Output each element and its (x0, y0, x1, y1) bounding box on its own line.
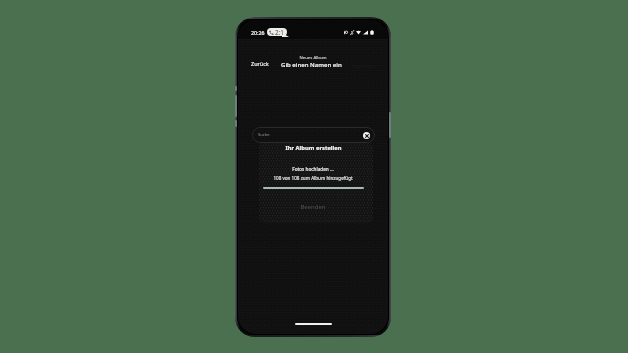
button[interactable]: Suche (252, 127, 375, 143)
button[interactable]: Zurück (251, 60, 269, 67)
staticText: Suche (258, 132, 270, 138)
staticText: Fotos hochladen ... (292, 166, 334, 172)
staticText: Beenden (300, 203, 326, 211)
staticText: Ihr Album erstellen (285, 144, 342, 152)
button[interactable]: Beenden (238, 202, 388, 212)
staticText: Zurück (251, 60, 269, 67)
staticText: 108 von 108 zum Album hinzugefügt (273, 175, 353, 181)
button[interactable]: Ongoing call (267, 28, 287, 36)
staticText: Neues Album (299, 54, 327, 60)
staticText: 2:14 (275, 28, 285, 36)
button[interactable]: Clear text (363, 132, 370, 139)
staticText: Gib einen Namen ein (281, 61, 342, 69)
staticText: 20:26 (251, 29, 265, 36)
